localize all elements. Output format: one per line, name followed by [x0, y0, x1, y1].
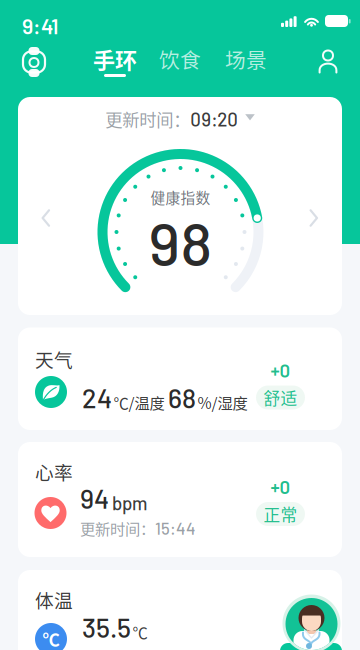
staticText: bpm — [112, 492, 147, 514]
staticText: 饮食 — [159, 44, 201, 74]
button[interactable]: Previous — [34, 206, 58, 230]
button[interactable]: 饮食 — [156, 38, 204, 86]
staticText: 68 — [168, 381, 196, 413]
button[interactable]: Band — [14, 38, 54, 86]
button[interactable]: 手环 — [90, 38, 140, 86]
staticText: 天气 — [35, 345, 73, 372]
staticText: +0 — [270, 475, 290, 498]
staticText: ℃/温度 — [113, 391, 164, 413]
button[interactable]: 体温 — [18, 570, 342, 650]
staticText: 舒适 — [263, 385, 297, 409]
staticText: 更新时间： — [80, 517, 155, 539]
staticText: 正常 — [263, 502, 297, 526]
staticText: 09:20 — [190, 108, 238, 130]
staticText: 15:44 — [155, 518, 196, 538]
button[interactable]: 更新时间： — [105, 108, 255, 130]
staticText: 更新时间： — [105, 106, 190, 132]
staticText: 24 — [82, 381, 112, 413]
staticText: 98 — [148, 206, 212, 278]
staticText: ℃ — [132, 621, 147, 643]
button[interactable]: 场景 — [222, 38, 270, 86]
staticText: 体温 — [35, 586, 73, 613]
staticText: 心率 — [35, 458, 73, 485]
staticText: 场景 — [225, 44, 267, 74]
button[interactable]: Next — [302, 206, 326, 230]
button[interactable]: 天气 — [18, 327, 342, 430]
staticText: 手环 — [93, 43, 137, 75]
staticText: ℃ — [42, 626, 59, 650]
staticText: 9:41 — [22, 13, 59, 39]
staticText: +0 — [270, 359, 290, 381]
staticText: 35.5 — [82, 611, 131, 643]
staticText: 94 — [80, 482, 109, 514]
button[interactable]: Profile — [308, 38, 348, 86]
button[interactable]: Ask a doctor — [276, 590, 360, 650]
staticText: 健康指数 — [150, 186, 210, 208]
button[interactable]: 心率 — [18, 442, 342, 557]
staticText: %/湿度 — [197, 391, 247, 413]
